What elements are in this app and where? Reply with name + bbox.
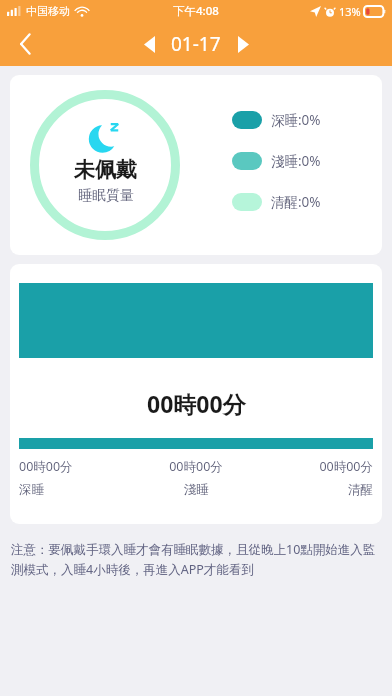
staticText: 未佩戴 xyxy=(74,157,137,183)
button[interactable]: 深睡:0% xyxy=(232,111,321,129)
button[interactable]: 未佩戴 xyxy=(10,75,382,255)
button[interactable]: 淺睡:0% xyxy=(232,152,321,170)
staticText: 00時00分 xyxy=(147,388,246,419)
staticText: 清醒:0% xyxy=(271,193,321,211)
button[interactable]: Next day xyxy=(227,28,259,60)
staticText: 00時00分 xyxy=(137,458,255,475)
button[interactable]: 清醒:0% xyxy=(232,193,321,211)
staticText: 01-17 xyxy=(171,31,221,57)
staticText: 下午4:08 xyxy=(173,3,219,19)
staticText: 00時00分 xyxy=(255,458,373,475)
staticText: 清醒 xyxy=(255,482,373,498)
staticText: 13% xyxy=(339,4,361,19)
staticText: 深睡:0% xyxy=(271,111,321,129)
staticText: 深睡 xyxy=(19,482,137,498)
staticText: 注意：要佩戴手環入睡才會有睡眠數據，且從晚上10點開始進入監測模式，入睡4小時後… xyxy=(11,541,381,578)
staticText: 中国移动 xyxy=(26,4,70,18)
staticText: 00時00分 xyxy=(19,458,137,475)
staticText: 淺睡 xyxy=(137,482,255,498)
staticText: 睡眠質量 xyxy=(78,187,134,205)
button[interactable]: 00時00分 xyxy=(10,264,382,524)
button[interactable]: Back xyxy=(0,22,50,66)
button[interactable]: Previous day xyxy=(133,28,165,60)
staticText: 淺睡:0% xyxy=(271,152,321,170)
